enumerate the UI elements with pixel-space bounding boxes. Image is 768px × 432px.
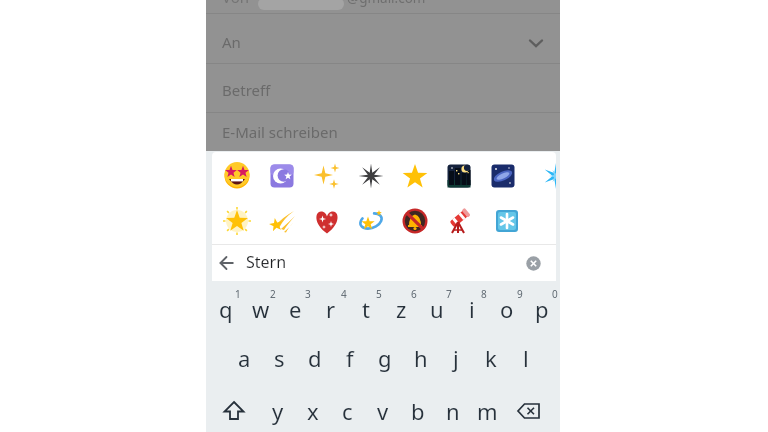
button[interactable] xyxy=(353,158,389,194)
button[interactable]: k xyxy=(473,335,508,381)
button[interactable] xyxy=(441,158,477,194)
button[interactable]: m xyxy=(470,388,505,432)
button[interactable]: e xyxy=(278,286,313,332)
staticText: f xyxy=(346,343,354,373)
staticText: y xyxy=(272,396,284,426)
staticText: 1 xyxy=(235,287,241,301)
staticText: n xyxy=(446,396,460,426)
button[interactable]: i xyxy=(454,286,489,332)
button[interactable] xyxy=(441,203,477,239)
staticText: 2 xyxy=(270,287,276,301)
button[interactable]: E-Mail schreiben xyxy=(206,113,560,151)
button[interactable] xyxy=(309,158,345,194)
button[interactable]: g xyxy=(367,335,402,381)
staticText: q xyxy=(219,294,233,324)
button[interactable] xyxy=(506,388,552,432)
staticText: 5 xyxy=(376,287,382,301)
button[interactable]: q xyxy=(208,286,243,332)
button[interactable] xyxy=(219,255,235,271)
button[interactable]: u xyxy=(419,286,454,332)
button[interactable] xyxy=(485,158,521,194)
staticText: r xyxy=(326,294,336,324)
staticText: a xyxy=(238,343,251,373)
staticText: k xyxy=(485,343,497,373)
button[interactable]: p xyxy=(524,286,559,332)
button[interactable]: Betreff xyxy=(206,64,560,112)
staticText: m xyxy=(477,396,498,426)
button[interactable] xyxy=(219,203,255,239)
staticText: p xyxy=(535,294,549,324)
button[interactable] xyxy=(397,158,433,194)
button[interactable]: o xyxy=(489,286,524,332)
staticText: t xyxy=(362,294,370,324)
button[interactable] xyxy=(353,203,389,239)
button[interactable] xyxy=(264,203,300,239)
button[interactable]: y xyxy=(260,388,295,432)
staticText: 3 xyxy=(305,287,311,301)
button[interactable]: Stern xyxy=(212,245,556,281)
button[interactable] xyxy=(397,203,433,239)
staticText: E-Mail schreiben xyxy=(222,122,338,142)
staticText: l xyxy=(523,343,529,373)
button[interactable]: An xyxy=(206,14,560,63)
button[interactable] xyxy=(526,256,541,271)
button[interactable] xyxy=(489,203,525,239)
staticText: 8 xyxy=(481,287,487,301)
staticText: s xyxy=(274,343,285,373)
staticText: An xyxy=(222,32,241,52)
staticText: u xyxy=(430,294,444,324)
button[interactable] xyxy=(212,388,256,432)
staticText: b xyxy=(411,396,425,426)
staticText: w xyxy=(252,294,270,324)
button[interactable]: x xyxy=(295,388,330,432)
button[interactable]: v xyxy=(365,388,400,432)
button[interactable]: h xyxy=(403,335,438,381)
staticText: 9 xyxy=(517,287,523,301)
staticText: Stern xyxy=(246,251,287,273)
button[interactable]: a xyxy=(227,335,262,381)
button[interactable]: l xyxy=(508,335,543,381)
staticText: 4 xyxy=(341,287,347,301)
staticText: v xyxy=(377,396,389,426)
button[interactable] xyxy=(309,203,345,239)
staticText: j xyxy=(453,343,459,373)
button[interactable]: w xyxy=(243,286,278,332)
button[interactable]: f xyxy=(332,335,367,381)
button[interactable]: d xyxy=(297,335,332,381)
button[interactable]: s xyxy=(262,335,297,381)
staticText: i xyxy=(469,294,475,324)
button[interactable] xyxy=(538,158,556,194)
button[interactable]: b xyxy=(400,388,435,432)
button[interactable]: t xyxy=(348,286,383,332)
staticText: c xyxy=(342,396,353,426)
staticText: g xyxy=(378,343,392,373)
button[interactable]: n xyxy=(435,388,470,432)
staticText: h xyxy=(414,343,428,373)
button[interactable] xyxy=(219,158,255,194)
staticText: z xyxy=(396,294,407,324)
button[interactable]: j xyxy=(438,335,473,381)
staticText: Betreff xyxy=(222,80,271,100)
staticText: @gmail.com xyxy=(347,0,426,7)
staticText: e xyxy=(289,294,302,324)
staticText: 6 xyxy=(411,287,417,301)
button[interactable]: z xyxy=(384,286,419,332)
button[interactable] xyxy=(264,158,300,194)
staticText: Von xyxy=(222,0,250,7)
button[interactable]: r xyxy=(313,286,348,332)
button[interactable]: c xyxy=(330,388,365,432)
staticText: d xyxy=(308,343,322,373)
staticText: 0 xyxy=(552,287,558,301)
staticText: o xyxy=(500,294,514,324)
staticText: 7 xyxy=(446,287,452,301)
staticText: x xyxy=(307,396,319,426)
